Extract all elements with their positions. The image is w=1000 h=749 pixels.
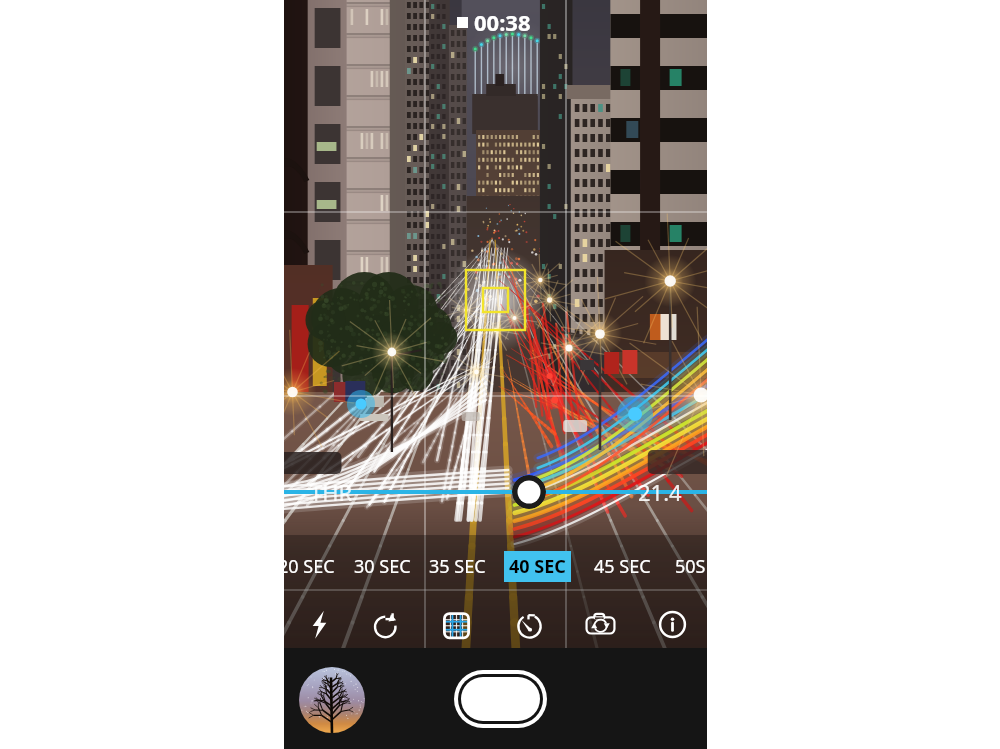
staticText: 30 SEC bbox=[354, 554, 411, 579]
staticText: 50SE bbox=[675, 554, 716, 579]
staticText: 40 SEC bbox=[509, 554, 566, 579]
button[interactable]: Shutter bbox=[454, 670, 547, 728]
button[interactable]: 45 SEC bbox=[589, 551, 656, 582]
button[interactable]: Timer bbox=[507, 602, 551, 646]
button[interactable]: Exposure bbox=[512, 475, 546, 509]
staticText: 45 SEC bbox=[594, 554, 651, 579]
staticText: 35 SEC bbox=[429, 554, 486, 579]
button[interactable]: Switch camera bbox=[578, 602, 622, 646]
button[interactable]: Info bbox=[650, 602, 694, 646]
button[interactable]: 40 SEC bbox=[504, 551, 571, 582]
staticText: 20 SEC bbox=[278, 554, 335, 579]
button[interactable]: Grid bbox=[434, 602, 478, 646]
staticText: THR bbox=[310, 477, 353, 507]
button[interactable]: 50SE bbox=[670, 551, 721, 582]
staticText: 21.4 bbox=[638, 477, 682, 507]
button[interactable]: 35 SEC bbox=[424, 551, 491, 582]
button[interactable]: Rotate bbox=[364, 602, 408, 646]
button[interactable]: 20 SEC bbox=[273, 551, 340, 582]
staticText: 00:38 bbox=[474, 7, 531, 37]
button[interactable]: 30 SEC bbox=[349, 551, 416, 582]
button[interactable]: Gallery bbox=[299, 667, 365, 733]
button[interactable]: Flash bbox=[297, 602, 341, 646]
